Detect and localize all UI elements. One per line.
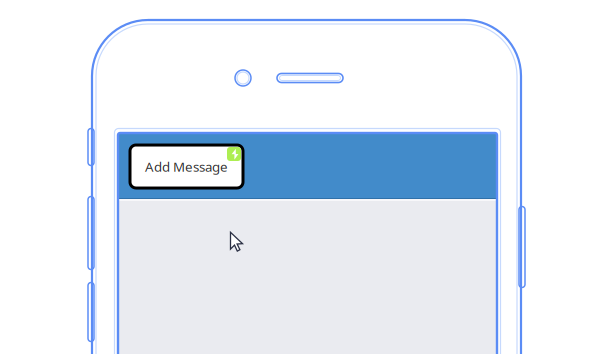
button[interactable]: Add Message [130,145,243,188]
staticText: Add Message [145,158,228,175]
